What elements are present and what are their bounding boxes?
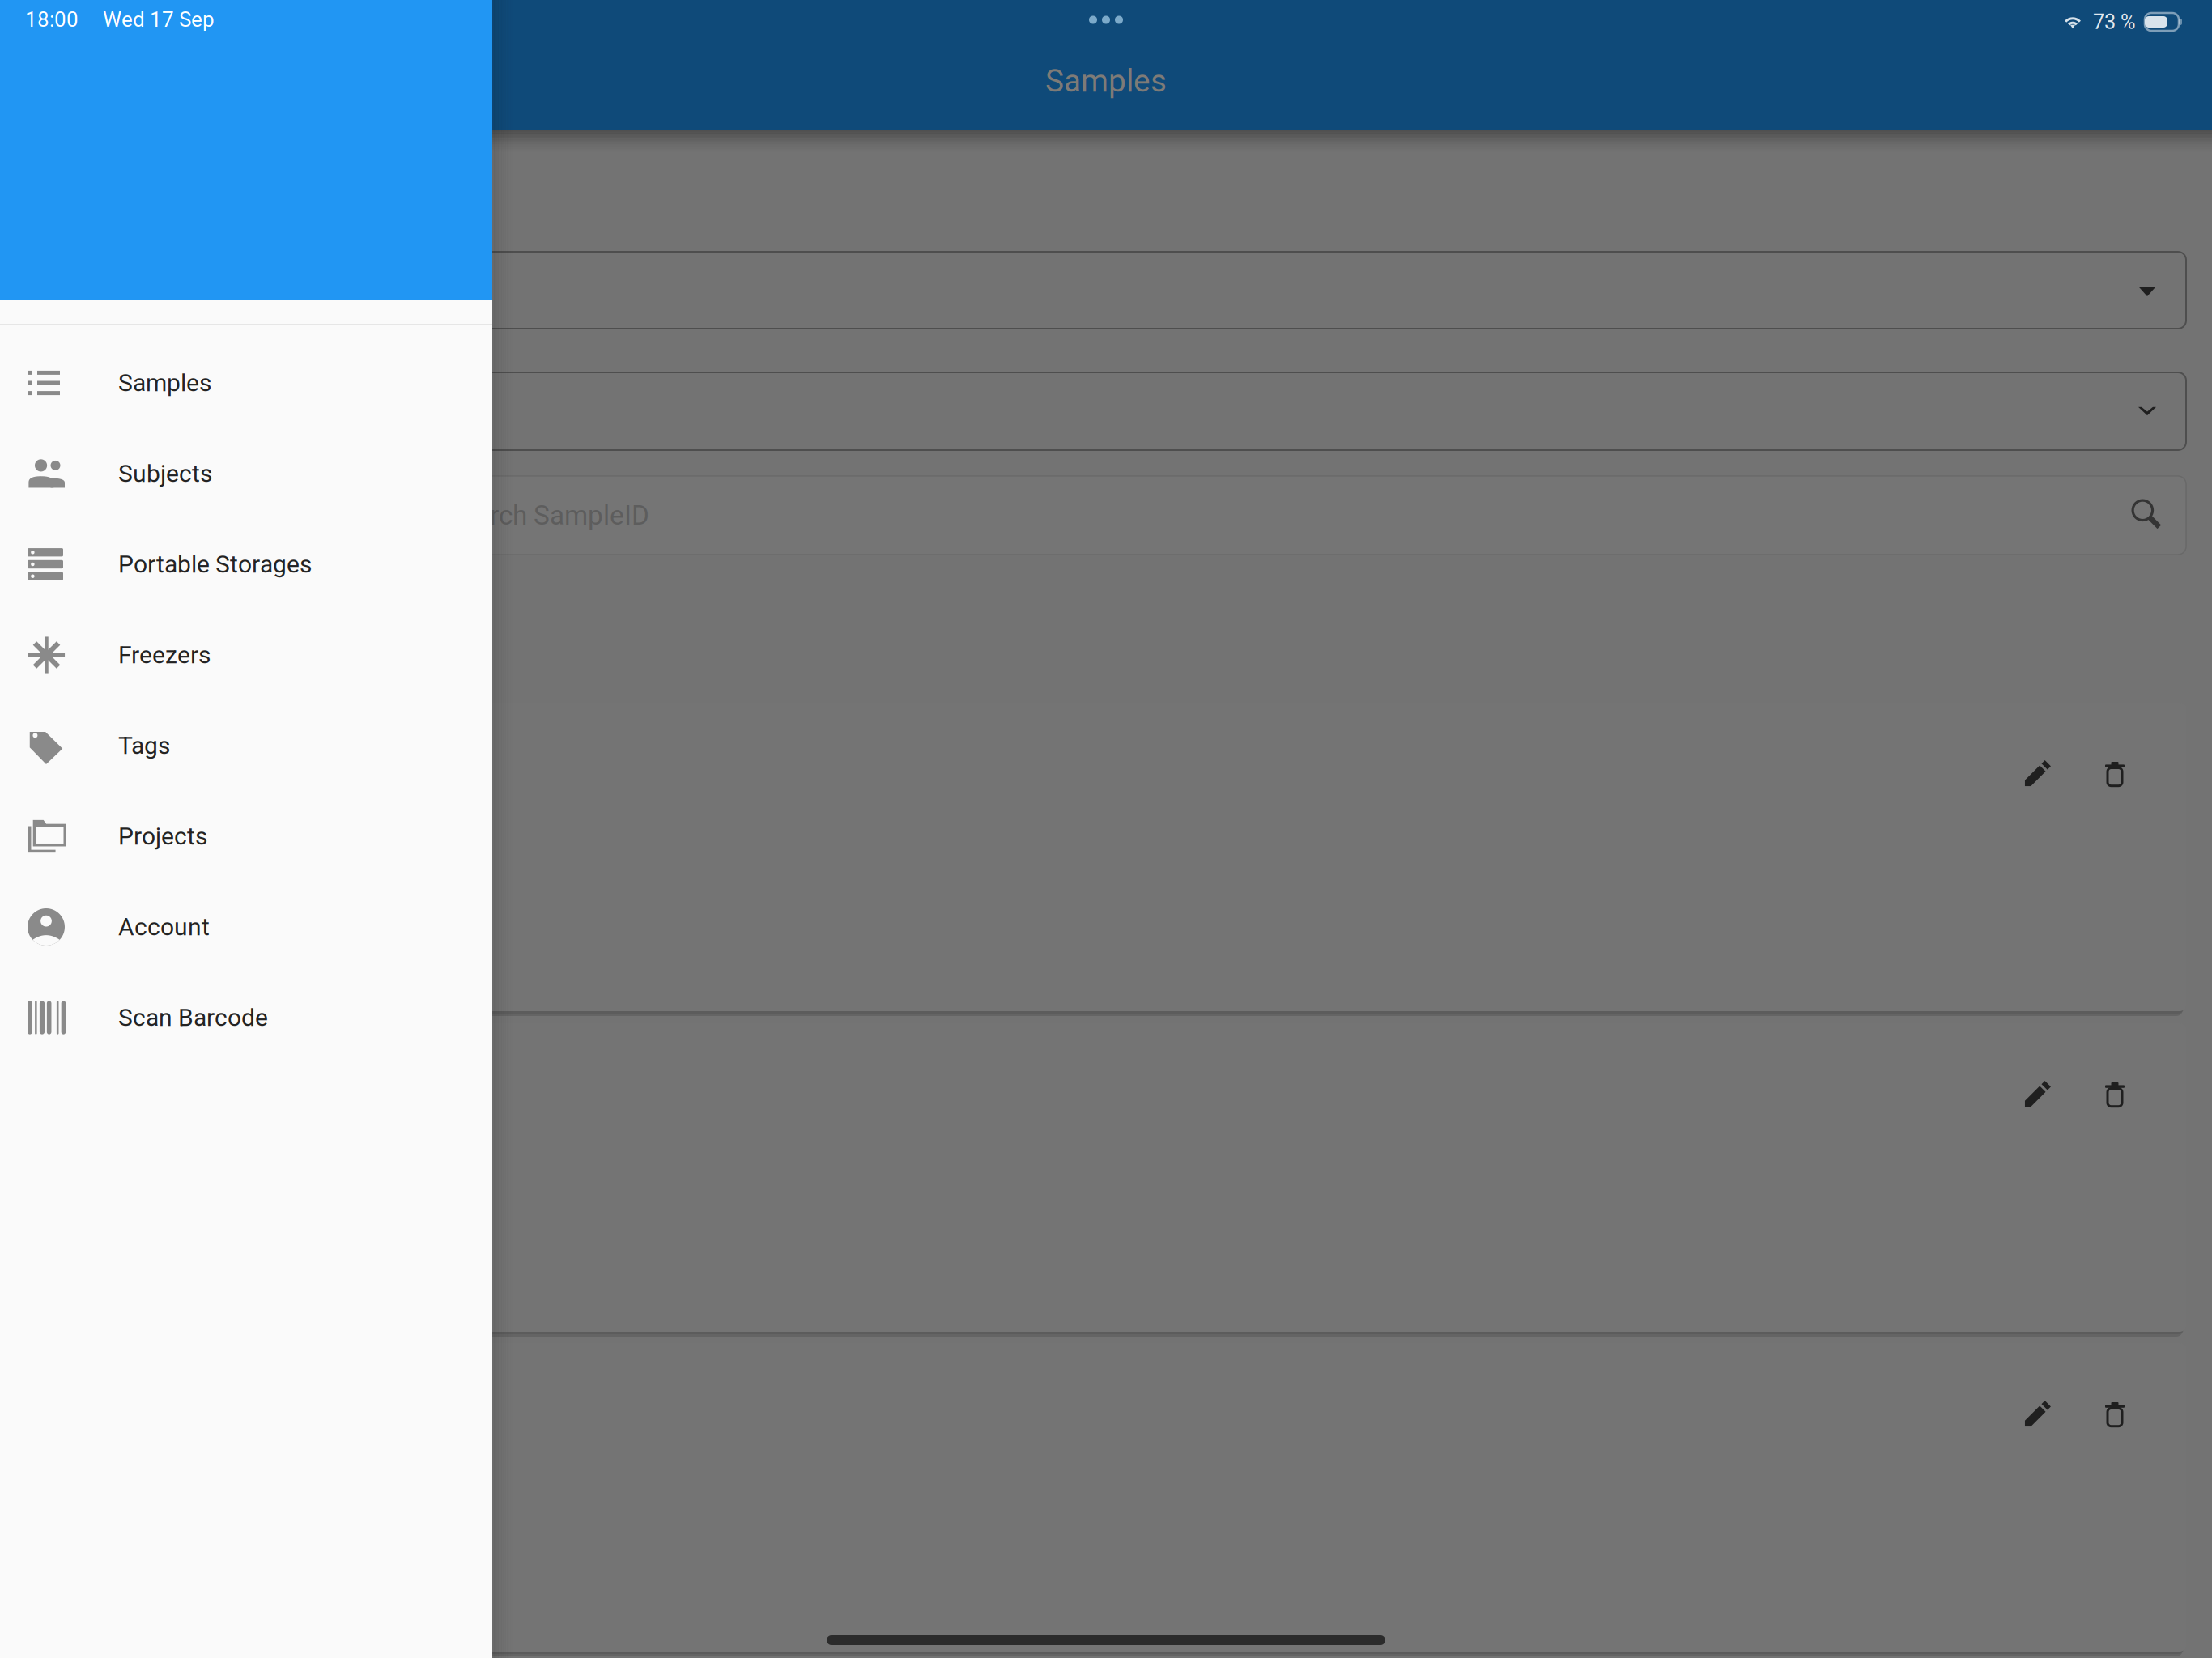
staticText: Scan Barcode (118, 1003, 268, 1032)
button[interactable]: Edit (1998, 735, 2076, 813)
button[interactable]: Edit (1998, 1056, 2076, 1133)
staticText: Subjects (118, 459, 212, 488)
button[interactable]: Delete (2076, 1375, 2154, 1453)
staticText: Samples (118, 369, 211, 397)
button[interactable]: Scan Barcode (0, 972, 492, 1063)
button[interactable]: Account (0, 882, 492, 972)
staticText: Freezers (118, 641, 211, 669)
staticText: Samples (1045, 63, 1167, 99)
button[interactable]: Tags (0, 700, 492, 791)
staticText: 73 % (2093, 10, 2136, 34)
button[interactable]: Projects (0, 791, 492, 882)
staticText: Account (118, 913, 210, 941)
button[interactable]: Delete (2076, 735, 2154, 813)
staticText: Portable Storages (118, 550, 312, 579)
staticText: 18:00 (25, 7, 79, 32)
button[interactable]: Edit (1998, 1375, 2076, 1453)
staticText: Search SampleID (445, 500, 649, 531)
button[interactable]: Subjects (0, 428, 492, 519)
button[interactable]: Search (2132, 500, 2161, 529)
button[interactable]: Freezers (0, 610, 492, 700)
button[interactable]: Select storage (28, 252, 2186, 329)
staticText: Tags (118, 731, 170, 760)
staticText: Wed 17 Sep (103, 7, 215, 32)
staticText: Projects (118, 822, 207, 851)
button[interactable]: Select project (28, 372, 2186, 450)
button[interactable]: Portable Storages (0, 519, 492, 610)
button[interactable]: Samples (0, 338, 492, 428)
button[interactable]: Delete (2076, 1056, 2154, 1133)
